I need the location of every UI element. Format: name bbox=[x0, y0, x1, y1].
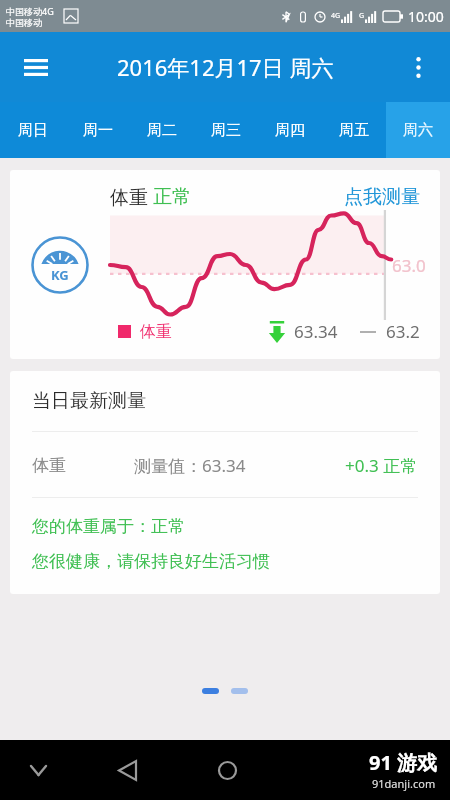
button[interactable]: Back bbox=[103, 746, 151, 794]
staticText: 63.2 bbox=[386, 320, 420, 343]
staticText: 2016年12月17日 周六 bbox=[117, 52, 334, 82]
staticText: 您很健康，请保持良好生活习惯 bbox=[32, 551, 270, 572]
staticText: 体重 bbox=[110, 184, 153, 210]
staticText: G bbox=[359, 11, 365, 21]
staticText: 周四 bbox=[275, 121, 305, 140]
staticText: 10:00 bbox=[408, 7, 444, 26]
staticText: 周五 bbox=[339, 121, 369, 140]
button[interactable]: 周日 bbox=[0, 102, 65, 158]
staticText: 周日 bbox=[18, 121, 48, 140]
button[interactable]: 体重 bbox=[10, 170, 440, 359]
button[interactable]: Hide bbox=[18, 750, 58, 790]
staticText: 91danji.com bbox=[372, 776, 436, 791]
staticText: 点我测量 bbox=[344, 185, 420, 209]
staticText: 周六 bbox=[403, 121, 433, 140]
staticText: 周二 bbox=[147, 121, 177, 140]
button[interactable]: Menu bbox=[14, 45, 58, 89]
button[interactable]: 周三 bbox=[194, 102, 258, 158]
staticText: 体重 bbox=[32, 455, 66, 476]
staticText: 91 游戏 bbox=[369, 749, 438, 776]
button[interactable]: 点我测量 bbox=[344, 185, 420, 209]
staticText: +0.3 正常 bbox=[345, 454, 418, 477]
staticText: 4G bbox=[331, 11, 341, 21]
staticText: 周三 bbox=[211, 121, 241, 140]
staticText: KG bbox=[51, 266, 69, 284]
button[interactable]: More options bbox=[396, 45, 440, 89]
button[interactable]: 周五 bbox=[322, 102, 386, 158]
staticText: 当日最新测量 bbox=[32, 389, 146, 413]
staticText: 中国移动 bbox=[6, 17, 42, 28]
staticText: 63.34 bbox=[294, 320, 338, 343]
staticText: 63.0 bbox=[392, 254, 426, 277]
staticText: 体重 bbox=[140, 322, 172, 342]
button[interactable]: 周一 bbox=[65, 102, 130, 158]
staticText: 您的体重属于：正常 bbox=[32, 516, 185, 537]
button[interactable]: 周六 bbox=[386, 102, 450, 158]
button[interactable]: Page 1 bbox=[202, 688, 219, 694]
staticText: 中国移动4G bbox=[6, 5, 54, 17]
button[interactable]: 周四 bbox=[258, 102, 322, 158]
button[interactable]: Home bbox=[203, 746, 251, 794]
staticText: 周一 bbox=[83, 121, 113, 140]
button[interactable]: 当日最新测量 bbox=[10, 371, 440, 594]
button[interactable]: 周二 bbox=[130, 102, 194, 158]
staticText: 测量值：63.34 bbox=[134, 454, 246, 477]
button[interactable]: Page 2 bbox=[231, 688, 248, 694]
staticText: 正常 bbox=[153, 185, 191, 209]
